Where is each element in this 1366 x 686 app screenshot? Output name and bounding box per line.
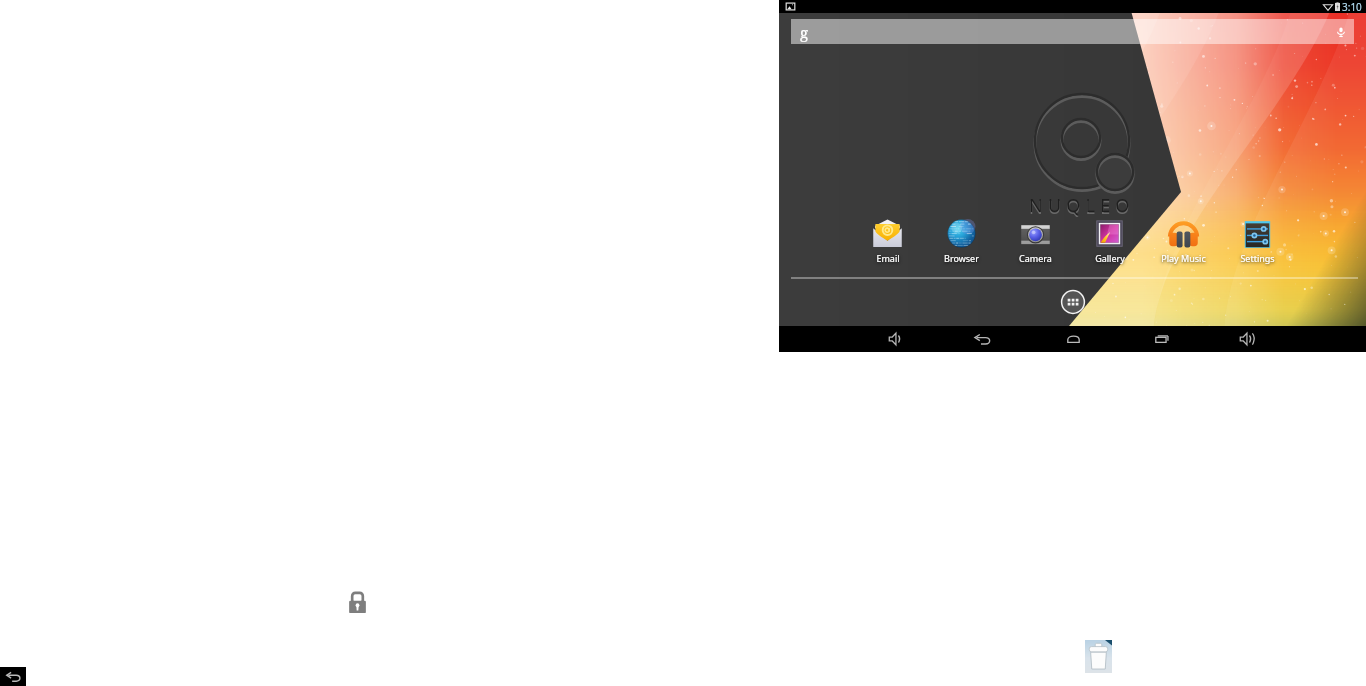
staticText: Settings [1240,252,1275,264]
button[interactable]: Back [961,326,1003,352]
button[interactable]: Home [1052,326,1094,352]
staticText: Camera [1019,252,1052,264]
button[interactable]: Apps [1060,289,1086,315]
button[interactable]: Email [857,217,917,265]
button[interactable]: g [791,19,1354,44]
staticText: 3:10 [1342,0,1362,13]
button[interactable]: Play Music [1153,217,1213,265]
staticText: Email [876,252,900,264]
staticText: Play Music [1161,252,1206,264]
button[interactable]: Lock [348,592,367,614]
staticText: NUQLEO [1029,195,1135,220]
button[interactable]: Gallery [1079,217,1139,265]
button[interactable]: Camera [1005,217,1065,265]
button[interactable]: Volume down [875,326,917,352]
staticText: Browser [944,252,979,264]
button[interactable]: Volume up [1226,326,1268,352]
button[interactable]: Settings [1227,217,1287,265]
staticText: g [800,22,809,42]
button[interactable]: Recents [1140,326,1182,352]
button[interactable]: Delete [1085,640,1112,673]
staticText: Gallery [1095,252,1125,264]
button[interactable]: Browser [931,217,991,265]
staticText: NUQLEO [1029,193,1135,218]
button[interactable]: Back [0,667,26,686]
